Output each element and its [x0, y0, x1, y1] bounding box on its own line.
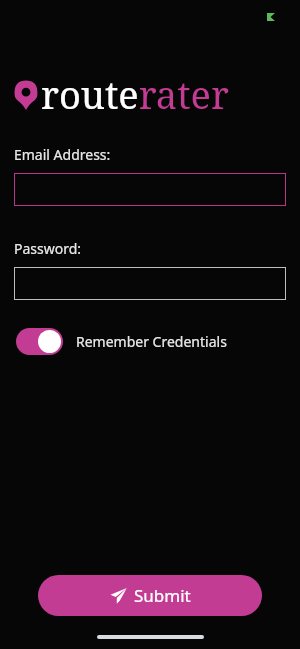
- staticText: Password:: [14, 239, 82, 258]
- button[interactable]: Email Address input: [14, 173, 286, 206]
- staticText: Submit: [134, 584, 191, 607]
- staticText: Email Address:: [14, 145, 111, 164]
- staticText: routerater: [41, 68, 229, 120]
- other: Status indicator: [267, 13, 275, 21]
- button[interactable]: Submit: [38, 575, 262, 616]
- button[interactable]: Remember Credentials: [16, 328, 227, 355]
- button[interactable]: Password input: [14, 267, 286, 300]
- staticText: Remember Credentials: [76, 332, 227, 351]
